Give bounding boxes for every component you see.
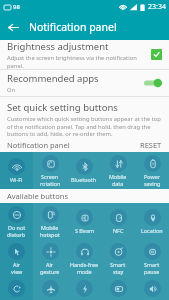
staticText: Set quick setting buttons bbox=[7, 101, 118, 114]
button[interactable]: plane bbox=[33, 277, 67, 300]
staticText: saving bbox=[144, 180, 161, 187]
staticText: S Beam bbox=[75, 227, 94, 234]
button[interactable]: Mobile data bbox=[101, 152, 135, 189]
button[interactable]: Recommended apps bbox=[0, 70, 169, 96]
staticText: Mobile bbox=[109, 173, 127, 180]
button[interactable]: screenmirror bbox=[101, 277, 135, 300]
staticText: Hands-free bbox=[70, 261, 99, 268]
button[interactable]: Smart stay bbox=[101, 240, 135, 277]
staticText: pause bbox=[144, 268, 160, 275]
staticText: data bbox=[112, 180, 124, 187]
staticText: Bluetooth bbox=[71, 176, 97, 183]
staticText: Recommended apps bbox=[7, 72, 99, 85]
staticText: Notification panel bbox=[7, 140, 70, 150]
button[interactable]: Smart pause bbox=[135, 240, 169, 277]
staticText: Power bbox=[144, 173, 160, 180]
staticText: RESET bbox=[140, 140, 162, 150]
button[interactable]: Do not disturb bbox=[0, 203, 33, 240]
staticText: Adjust the screen brightness via the not… bbox=[7, 54, 151, 69]
button[interactable]: Hands-free mode bbox=[67, 240, 101, 277]
staticText: Screen bbox=[41, 173, 59, 180]
staticText: mode bbox=[77, 268, 92, 275]
button[interactable]: Bluetooth bbox=[67, 152, 101, 189]
button[interactable]: S Beam bbox=[67, 203, 101, 240]
staticText: rotation bbox=[40, 180, 61, 187]
staticText: Smart bbox=[110, 261, 126, 268]
staticText: view bbox=[11, 268, 23, 275]
button[interactable]: Air view bbox=[0, 240, 33, 277]
staticText: Location bbox=[141, 227, 163, 234]
button[interactable]: Brightness adjustment bbox=[0, 40, 169, 69]
staticText: stay bbox=[113, 268, 124, 275]
button[interactable]: NFC bbox=[101, 203, 135, 240]
staticText: gesture bbox=[40, 268, 60, 275]
staticText: Wi-Fi bbox=[10, 176, 23, 183]
staticText: Smart bbox=[144, 261, 160, 268]
staticText: disturb bbox=[7, 231, 26, 238]
button[interactable]: flash bbox=[67, 277, 101, 300]
button[interactable]: sound bbox=[135, 277, 169, 300]
button[interactable]: sync bbox=[0, 277, 33, 300]
staticText: Air bbox=[13, 261, 21, 268]
staticText: Notification panel bbox=[29, 20, 117, 34]
button[interactable]: Screen rotation bbox=[33, 152, 67, 189]
staticText: hotspot bbox=[40, 231, 60, 238]
staticText: Do not bbox=[8, 224, 26, 231]
other: Recommended apps switch bbox=[144, 78, 162, 88]
staticText: On bbox=[7, 86, 16, 94]
staticText: Customize which quick setting buttons ap… bbox=[7, 115, 162, 137]
button[interactable]: Wi-Fi bbox=[0, 152, 33, 189]
button[interactable]: Location bbox=[135, 203, 169, 240]
staticText: Mobile bbox=[41, 224, 59, 231]
button[interactable]: Air gesture bbox=[33, 240, 67, 277]
staticText: Available buttons bbox=[7, 191, 69, 201]
staticText: Air bbox=[46, 261, 54, 268]
staticText: Brightness adjustment bbox=[7, 40, 109, 53]
other: Brightness adjustment checkbox bbox=[151, 49, 162, 60]
staticText: 23:34 bbox=[148, 2, 166, 12]
staticText: 98 bbox=[13, 3, 20, 11]
button[interactable]: Back bbox=[0, 14, 26, 40]
button[interactable]: Mobile hotspot bbox=[33, 203, 67, 240]
button[interactable]: RESET bbox=[140, 140, 162, 150]
staticText: NFC bbox=[113, 227, 124, 234]
button[interactable]: Power saving bbox=[135, 152, 169, 189]
